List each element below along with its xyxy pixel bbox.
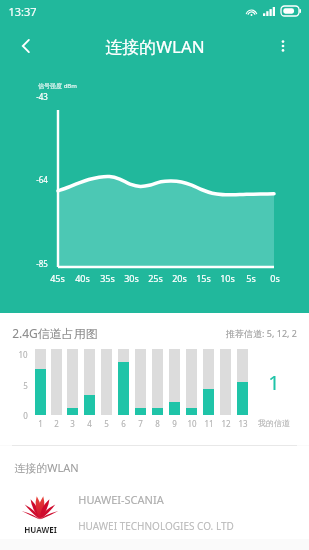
staticText: HUAWEI	[24, 524, 57, 535]
staticText: 6	[121, 418, 126, 429]
button[interactable]: Back	[6, 26, 46, 66]
staticText: -64	[36, 174, 48, 185]
staticText: 7	[138, 418, 143, 429]
button[interactable]	[169, 349, 180, 415]
staticText: 10	[187, 418, 197, 429]
staticText: 8	[155, 418, 160, 429]
staticText: 我的信道	[258, 418, 290, 428]
button[interactable]: HUAWEI	[0, 485, 309, 539]
staticText: -85	[36, 258, 48, 269]
button[interactable]: More options	[263, 26, 303, 66]
staticText: 5	[23, 380, 28, 391]
staticText: 5	[104, 418, 109, 429]
button[interactable]	[237, 349, 248, 415]
staticText: 2.4G信道占用图	[12, 325, 98, 341]
staticText: HUAWEI TECHNOLOGIES CO. LTD	[78, 519, 234, 533]
staticText: 信号强度 dBm	[38, 82, 77, 90]
button[interactable]	[135, 349, 146, 415]
staticText: 12	[221, 418, 231, 429]
button[interactable]	[118, 349, 129, 415]
button[interactable]	[84, 349, 95, 415]
button[interactable]	[152, 349, 163, 415]
staticText: 0s	[270, 272, 280, 284]
staticText: 1	[268, 369, 280, 396]
staticText: 30s	[124, 272, 139, 284]
staticText: 10	[18, 349, 28, 360]
staticText: 13	[238, 418, 248, 429]
staticText: 15s	[196, 272, 211, 284]
staticText: 连接的WLAN	[14, 460, 79, 475]
staticText: 0	[23, 410, 28, 421]
staticText: 20s	[172, 272, 187, 284]
staticText: 11	[204, 418, 214, 429]
staticText: 40s	[75, 272, 90, 284]
staticText: 2	[54, 418, 59, 429]
staticText: 25s	[148, 272, 163, 284]
button[interactable]	[67, 349, 78, 415]
staticText: 1	[38, 418, 43, 429]
staticText: -43	[36, 91, 48, 102]
staticText: 4	[87, 418, 92, 429]
staticText: 5s	[246, 272, 256, 284]
button[interactable]	[35, 349, 46, 415]
button[interactable]	[186, 349, 197, 415]
staticText: 9	[172, 418, 177, 429]
staticText: 10s	[220, 272, 235, 284]
staticText: 3	[70, 418, 75, 429]
staticText: HUAWEI-SCANIA	[78, 492, 164, 507]
staticText: 连接的WLAN	[105, 35, 205, 58]
staticText: 35s	[100, 272, 115, 284]
staticText: 45s	[50, 272, 65, 284]
staticText: 推荐信道: 5, 12, 2	[226, 327, 297, 339]
button[interactable]	[203, 349, 214, 415]
staticText: 13:37	[8, 4, 37, 19]
